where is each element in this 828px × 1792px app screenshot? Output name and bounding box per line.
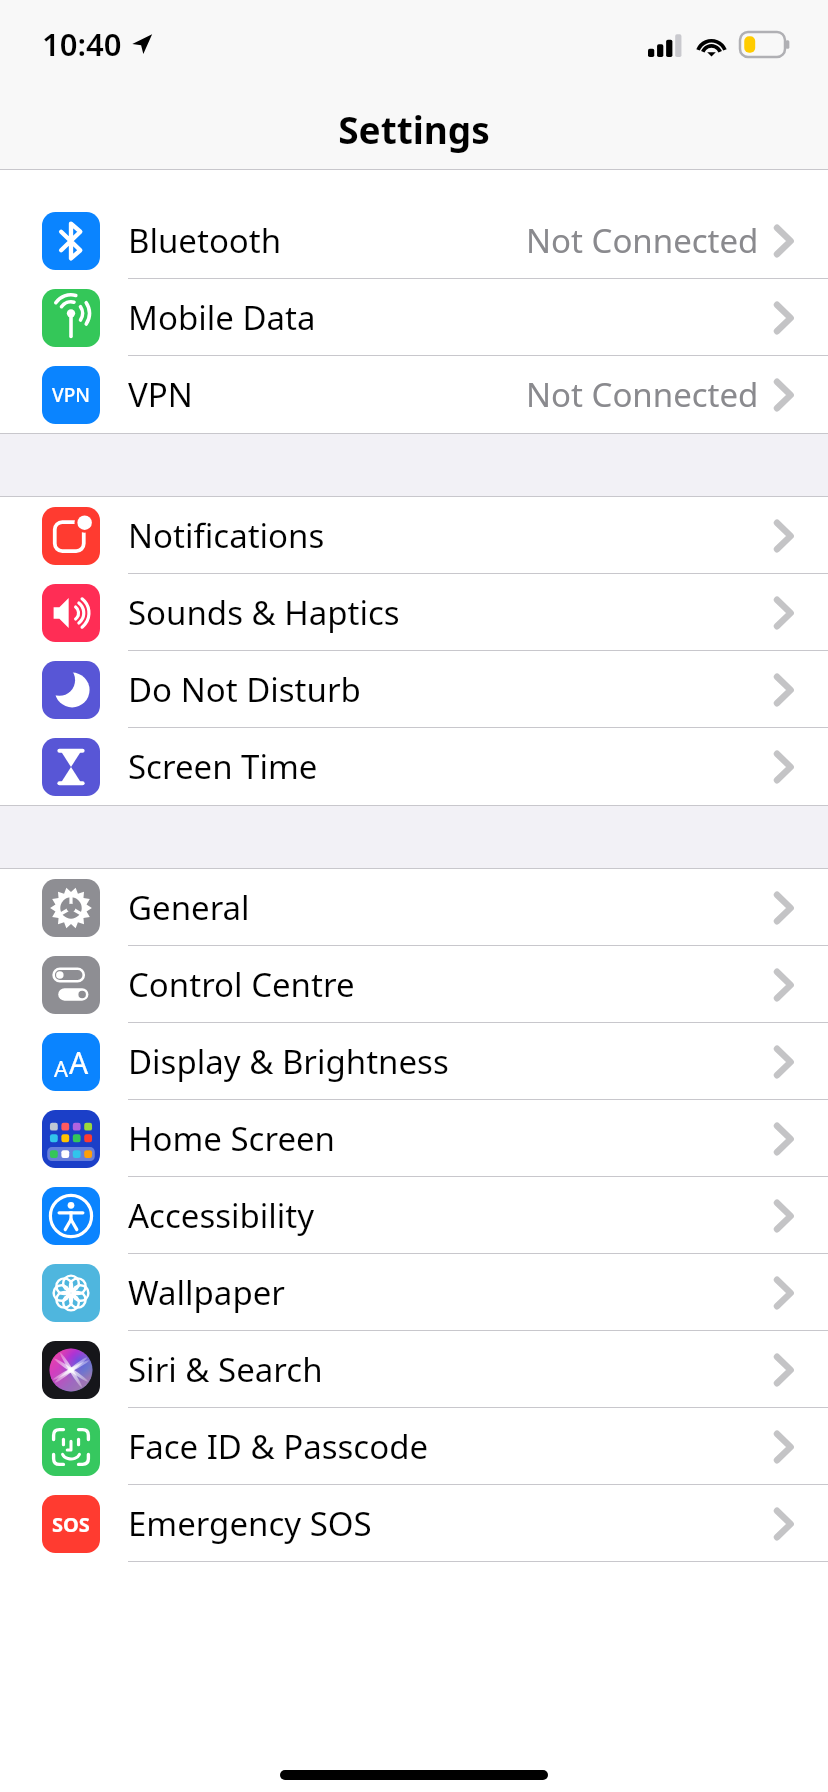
other: Bluetooth bbox=[42, 212, 100, 270]
staticText: Home Screen bbox=[128, 1116, 336, 1161]
staticText: VPN bbox=[128, 372, 193, 417]
button[interactable]: Mobile Data bbox=[0, 279, 828, 356]
staticText: Sounds & Haptics bbox=[128, 590, 400, 635]
button[interactable]: Display and Brightness bbox=[0, 1023, 828, 1100]
other: VPN bbox=[42, 366, 100, 424]
other: Accessibility bbox=[42, 1187, 100, 1245]
other: Sounds and Haptics bbox=[42, 584, 100, 642]
other: Display and Brightness bbox=[42, 1033, 100, 1091]
staticText: Control Centre bbox=[128, 962, 355, 1007]
staticText: Accessibility bbox=[128, 1193, 315, 1238]
button[interactable]: Siri and Search bbox=[0, 1331, 828, 1408]
staticText: Not Connected bbox=[526, 372, 759, 417]
button[interactable]: Face ID and Passcode bbox=[0, 1408, 828, 1485]
staticText: General bbox=[128, 885, 250, 930]
staticText: Face ID & Passcode bbox=[128, 1424, 429, 1469]
staticText: Bluetooth bbox=[128, 218, 282, 263]
other: Wallpaper bbox=[42, 1264, 100, 1322]
staticText: Siri & Search bbox=[128, 1347, 323, 1392]
staticText: Not Connected bbox=[526, 218, 759, 263]
staticText: Screen Time bbox=[128, 744, 318, 789]
other: Emergency SOS bbox=[42, 1495, 100, 1553]
button[interactable]: VPN bbox=[0, 356, 828, 433]
staticText: Mobile Data bbox=[128, 295, 316, 340]
other: Do Not Disturb bbox=[42, 661, 100, 719]
staticText: 10:40 bbox=[42, 23, 122, 65]
button[interactable]: General bbox=[0, 869, 828, 946]
other: Face ID and Passcode bbox=[42, 1418, 100, 1476]
staticText: Notifications bbox=[128, 513, 325, 558]
button[interactable]: Control Centre bbox=[0, 946, 828, 1023]
button[interactable]: Screen Time bbox=[0, 728, 828, 805]
staticText: Emergency SOS bbox=[128, 1501, 372, 1546]
staticText: Wallpaper bbox=[128, 1270, 285, 1315]
button[interactable]: Accessibility bbox=[0, 1177, 828, 1254]
button[interactable]: Emergency SOS bbox=[0, 1485, 828, 1562]
button[interactable]: Sounds and Haptics bbox=[0, 574, 828, 651]
staticText: Settings bbox=[338, 104, 490, 154]
other: Notifications bbox=[42, 507, 100, 565]
other: Mobile Data bbox=[42, 289, 100, 347]
button[interactable]: Do Not Disturb bbox=[0, 651, 828, 728]
staticText: Do Not Disturb bbox=[128, 667, 361, 712]
staticText: SOS bbox=[52, 1511, 90, 1538]
button[interactable]: Wallpaper bbox=[0, 1254, 828, 1331]
staticText: A bbox=[54, 1053, 69, 1083]
button[interactable]: Bluetooth bbox=[0, 202, 828, 279]
button[interactable]: Notifications bbox=[0, 497, 828, 574]
other: General bbox=[42, 879, 100, 937]
staticText: Display & Brightness bbox=[128, 1039, 449, 1084]
other: Screen Time bbox=[42, 738, 100, 796]
staticText: A bbox=[69, 1042, 89, 1083]
other: Siri and Search bbox=[42, 1341, 100, 1399]
other: Control Centre bbox=[42, 956, 100, 1014]
button[interactable]: Home Screen bbox=[0, 1100, 828, 1177]
other: Home Screen bbox=[42, 1110, 100, 1168]
staticText: VPN bbox=[52, 382, 91, 408]
